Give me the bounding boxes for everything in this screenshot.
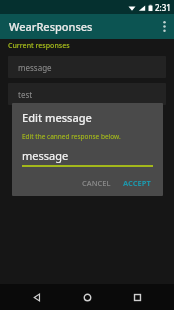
button[interactable]: message xyxy=(22,148,153,167)
button[interactable]: CANCEL xyxy=(76,174,117,192)
button[interactable]: test xyxy=(8,83,166,105)
staticText: 2:31 xyxy=(155,2,171,13)
button[interactable]: Back xyxy=(24,284,50,310)
staticText: message xyxy=(22,148,69,163)
staticText: message xyxy=(18,62,52,73)
button[interactable]: ACCEPT xyxy=(117,174,157,192)
staticText: ACCEPT xyxy=(123,178,151,188)
button[interactable]: Home xyxy=(74,284,100,310)
staticText: Edit message xyxy=(22,110,92,125)
button[interactable]: message xyxy=(8,56,166,78)
staticText: CANCEL xyxy=(82,178,111,188)
button[interactable]: More options xyxy=(154,14,174,39)
staticText: Current responses xyxy=(8,41,70,51)
staticText: WearResponses xyxy=(9,19,93,34)
staticText: test xyxy=(18,89,33,100)
staticText: Edit the canned response below. xyxy=(22,132,121,141)
button[interactable]: Recent apps xyxy=(124,284,150,310)
